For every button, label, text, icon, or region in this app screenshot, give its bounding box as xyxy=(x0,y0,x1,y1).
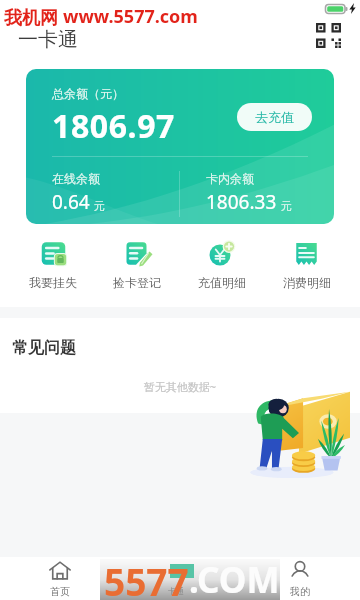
staticText: 1806.97 xyxy=(52,104,176,148)
staticText: 卡通 xyxy=(168,586,184,596)
button[interactable]: 去充值 xyxy=(237,103,312,131)
staticText: 暂无其他数据~ xyxy=(0,379,360,394)
staticText: 去充值 xyxy=(255,109,294,125)
button[interactable]: Scan QR code xyxy=(316,23,341,48)
staticText: 我要挂失 xyxy=(29,275,77,290)
staticText: 常见问题 xyxy=(12,338,76,358)
staticText: 首页 xyxy=(50,585,70,598)
staticText: .COM xyxy=(189,556,280,597)
button[interactable]: 充值明细 xyxy=(179,241,264,290)
staticText: 0.64 xyxy=(52,189,90,215)
button[interactable]: 总余额（元） xyxy=(26,69,334,224)
staticText: 消费明细 xyxy=(283,275,331,290)
staticText: 1806.33 xyxy=(206,189,277,215)
staticText: 总余额（元） xyxy=(52,86,124,101)
staticText: 5577 xyxy=(104,556,189,597)
staticText: 元 xyxy=(281,199,292,213)
staticText: 我的 xyxy=(290,585,310,598)
staticText: 捡卡登记 xyxy=(113,275,161,290)
staticText: 我机网 xyxy=(4,7,58,30)
staticText: www.5577.com xyxy=(63,4,198,29)
button[interactable]: 我要挂失 xyxy=(11,241,95,290)
button[interactable]: 我的 xyxy=(240,557,360,600)
button[interactable]: 消费明细 xyxy=(264,241,349,290)
staticText: 元 xyxy=(94,199,105,213)
button[interactable]: 捡卡登记 xyxy=(95,241,179,290)
button[interactable]: 首页 xyxy=(0,557,120,600)
staticText: 一卡通 xyxy=(18,27,78,52)
staticText: 在线余额 xyxy=(52,171,100,186)
staticText: 充值明细 xyxy=(198,275,246,290)
staticText: 卡内余额 xyxy=(206,171,254,186)
